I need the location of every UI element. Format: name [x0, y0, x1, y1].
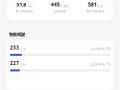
staticText: 占总里程的 9%	[90, 47, 110, 51]
staticText: 公里	[19, 47, 26, 51]
staticText: 智能驾驶	[9, 32, 25, 37]
staticText: 445	[51, 1, 60, 8]
staticText: 占总时长的 7%	[90, 62, 110, 66]
staticText: 累计驾驶时长	[15, 9, 33, 13]
staticText: 51.8	[16, 1, 26, 8]
staticText: 581	[88, 1, 97, 8]
staticText: 分钟	[19, 63, 26, 66]
staticText: 千米	[97, 4, 103, 8]
staticText: 233	[10, 44, 19, 51]
staticText: 227	[10, 60, 19, 66]
staticText: 千瓦时	[60, 4, 69, 8]
staticText: 累计驾驶里程	[86, 9, 104, 13]
staticText: 总耗电量	[54, 9, 66, 13]
staticText: 小时	[27, 4, 33, 8]
